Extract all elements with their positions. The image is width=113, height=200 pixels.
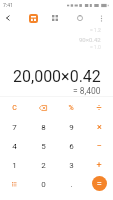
staticText: 8 [41,123,46,132]
button[interactable]: − [85,136,113,155]
staticText: ÷ [96,103,102,114]
button[interactable]: C [0,97,29,117]
staticText: × [97,122,102,133]
staticText: + [96,160,102,171]
staticText: C [12,104,17,112]
staticText: = 1.0 [90,44,101,50]
staticText: 5 [41,142,46,151]
staticText: 7 [12,123,17,132]
button[interactable]: . [57,174,85,193]
button[interactable]: 1 [0,155,29,174]
staticText: 90×0.42 [79,36,101,43]
button[interactable]: 5 [29,136,57,155]
staticText: 1 [12,161,17,170]
button[interactable]: More options [93,10,109,26]
button[interactable]: Converter [47,10,63,26]
staticText: = 8,400 [73,86,101,96]
button[interactable]: 7 [0,117,29,136]
button[interactable]: 3 [57,155,85,174]
staticText: 3 [69,161,74,170]
button[interactable]: % [57,97,85,117]
button[interactable]: Scientific [72,10,88,26]
staticText: . [70,180,73,189]
staticText: 6 [69,142,74,151]
staticText: 7:41 [3,2,13,9]
staticText: 4 [12,142,17,151]
button[interactable]: 6 [57,136,85,155]
staticText: % [68,104,74,112]
button[interactable]: 0 [29,174,57,193]
staticText: 9 [69,123,74,132]
staticText: 2 [41,161,46,170]
button[interactable]: Calculator [25,10,41,26]
button[interactable]: Keypad layout [0,174,29,193]
button[interactable]: Back [0,10,16,26]
button[interactable]: 8 [29,117,57,136]
staticText: = [97,178,102,189]
staticText: = 1.2 [90,27,101,33]
button[interactable]: 9 [57,117,85,136]
staticText: 0 [41,180,46,189]
button[interactable]: × [85,117,113,136]
button[interactable]: 2 [29,155,57,174]
button[interactable]: ÷ [85,97,113,117]
button[interactable]: Backspace [29,97,57,117]
button[interactable]: 4 [0,136,29,155]
button[interactable]: Equals [85,174,113,193]
button[interactable]: + [85,155,113,174]
staticText: − [96,141,102,152]
staticText: 20,000×0.42 [13,67,101,86]
